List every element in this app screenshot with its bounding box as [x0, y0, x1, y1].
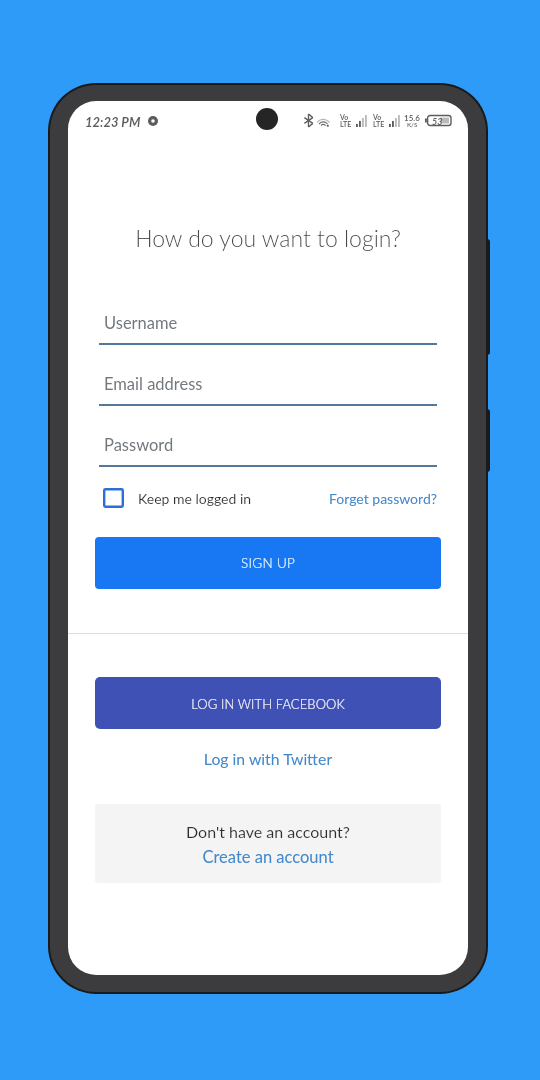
- button[interactable]: Create an account: [95, 847, 441, 867]
- button[interactable]: Email address: [104, 374, 203, 394]
- button[interactable]: Keep me logged in: [138, 490, 252, 507]
- button[interactable]: Password: [104, 435, 174, 455]
- staticText: LTE: [340, 120, 352, 128]
- staticText: LTE: [373, 120, 385, 128]
- staticText: 15.6: [404, 113, 420, 123]
- button[interactable]: SIGN UP: [95, 537, 441, 589]
- button[interactable]: LOG IN WITH FACEBOOK: [95, 677, 441, 729]
- staticText: 53: [432, 116, 443, 127]
- staticText: K/S: [407, 121, 418, 128]
- button[interactable]: Keep me logged in checkbox: [103, 488, 124, 508]
- staticText: 12:23 PM: [85, 114, 141, 130]
- staticText: Vo: [340, 113, 349, 121]
- staticText: Don't have an account?: [95, 822, 441, 841]
- staticText: How do you want to login?: [68, 224, 468, 252]
- staticText: SIGN UP: [95, 555, 441, 571]
- button[interactable]: Log in with Twitter: [68, 749, 468, 768]
- button[interactable]: Username: [104, 313, 178, 333]
- staticText: LOG IN WITH FACEBOOK: [95, 696, 441, 712]
- button[interactable]: Forget password?: [329, 490, 437, 507]
- staticText: Vo: [373, 113, 382, 121]
